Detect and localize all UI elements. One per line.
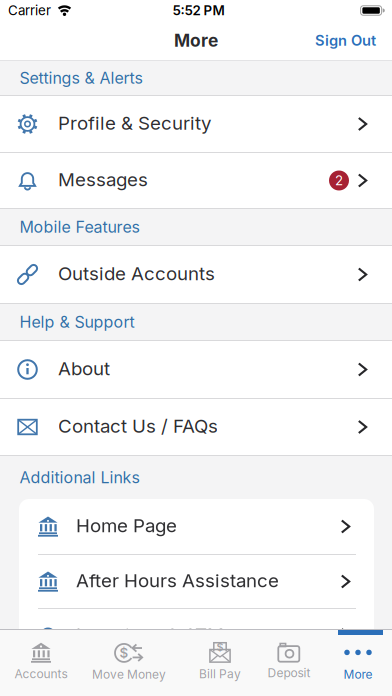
- staticText: Additional Links: [19, 468, 139, 487]
- staticText: $: [216, 641, 223, 653]
- button[interactable]: Deposit: [244, 643, 334, 680]
- button[interactable]: Accounts: [0, 642, 86, 681]
- staticText: Mobile Features: [19, 218, 139, 236]
- staticText: 2: [335, 173, 343, 188]
- staticText: Deposit: [267, 666, 310, 680]
- staticText: Settings & Alerts: [19, 69, 142, 87]
- button[interactable]: Profile & Security: [0, 96, 392, 152]
- staticText: More: [343, 667, 372, 682]
- staticText: $: [119, 645, 128, 661]
- button[interactable]: Contact Us / FAQs: [0, 399, 392, 455]
- staticText: Home Page: [76, 514, 177, 536]
- staticText: Profile & Security: [58, 112, 211, 134]
- button[interactable]: After Hours Assistance: [19, 555, 374, 608]
- button[interactable]: About: [0, 341, 392, 398]
- staticText: More: [174, 30, 218, 51]
- button[interactable]: Sign Out: [315, 32, 376, 49]
- staticText: About: [58, 357, 110, 379]
- button[interactable]: Messages: [0, 153, 392, 208]
- button[interactable]: Home Page: [19, 499, 374, 554]
- button[interactable]: More: [313, 641, 392, 682]
- staticText: Locations & ATMs: [76, 624, 234, 646]
- staticText: Carrier: [8, 3, 51, 18]
- button[interactable]: Outside Accounts: [0, 246, 392, 303]
- staticText: 5:52 PM: [172, 3, 224, 18]
- staticText: Accounts: [14, 667, 67, 681]
- staticText: Contact Us / FAQs: [58, 415, 218, 437]
- staticText: Move Money: [92, 667, 166, 682]
- staticText: Bill Pay: [199, 667, 241, 681]
- staticText: After Hours Assistance: [76, 569, 279, 591]
- staticText: Help & Support: [19, 313, 134, 331]
- button[interactable]: Bill Pay: [175, 642, 265, 681]
- staticText: Outside Accounts: [58, 262, 215, 284]
- button[interactable]: Move Money: [84, 641, 174, 682]
- staticText: Sign Out: [315, 32, 376, 49]
- staticText: Messages: [58, 168, 148, 190]
- button[interactable]: Locations & ATMs: [19, 609, 374, 664]
